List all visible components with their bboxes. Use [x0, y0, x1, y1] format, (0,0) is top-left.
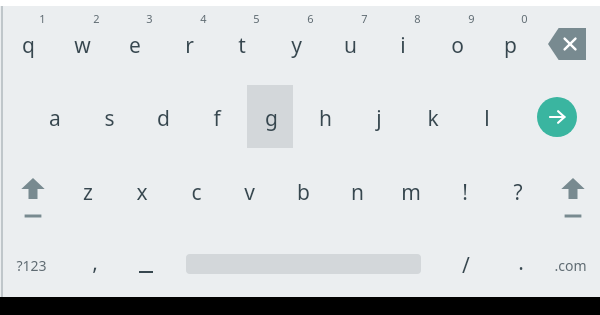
button[interactable]: e: [105, 27, 165, 63]
button[interactable]: q: [0, 27, 58, 63]
staticText: ,: [92, 248, 98, 277]
staticText: 9: [468, 11, 475, 26]
button[interactable]: s: [79, 100, 139, 136]
button[interactable]: z: [58, 174, 118, 210]
button[interactable]: Backspace: [548, 28, 586, 60]
button[interactable]: 1: [12, 0, 72, 36]
staticText: e: [129, 31, 141, 60]
button[interactable]: n: [327, 174, 387, 210]
staticText: 1: [39, 11, 46, 26]
staticText: d: [157, 104, 170, 133]
staticText: q: [22, 31, 35, 60]
button[interactable]: l: [457, 100, 517, 136]
staticText: /: [462, 251, 470, 280]
button[interactable]: v: [219, 174, 279, 210]
staticText: n: [351, 178, 364, 207]
staticText: t: [238, 31, 246, 60]
button[interactable]: w: [52, 27, 112, 63]
button[interactable]: 5: [226, 0, 286, 36]
staticText: w: [74, 31, 91, 60]
button[interactable]: Shift: [18, 176, 48, 222]
button[interactable]: k: [403, 100, 463, 136]
button[interactable]: i: [373, 27, 433, 63]
button[interactable]: 6: [280, 0, 340, 36]
button[interactable]: d: [133, 100, 193, 136]
staticText: j: [376, 104, 382, 133]
staticText: m: [401, 178, 421, 207]
button[interactable]: t: [212, 27, 272, 63]
button[interactable]: f: [187, 100, 247, 136]
button[interactable]: p: [480, 27, 540, 63]
button[interactable]: c: [166, 174, 226, 210]
button[interactable]: o: [427, 27, 487, 63]
staticText: z: [83, 178, 93, 207]
staticText: u: [344, 31, 357, 60]
button[interactable]: .com: [540, 247, 600, 283]
staticText: a: [49, 104, 61, 133]
staticText: 8: [414, 11, 421, 26]
staticText: o: [451, 31, 464, 60]
button[interactable]: u: [320, 27, 380, 63]
staticText: .: [518, 248, 524, 277]
button[interactable]: 0: [494, 0, 554, 36]
staticText: f: [213, 104, 221, 133]
button[interactable]: 8: [387, 0, 447, 36]
staticText: 2: [93, 11, 100, 26]
button[interactable]: Shift: [558, 176, 588, 222]
staticText: v: [244, 178, 255, 207]
staticText: i: [400, 31, 406, 60]
staticText: 6: [307, 11, 314, 26]
button[interactable]: Enter: [537, 97, 577, 137]
button[interactable]: x: [112, 174, 172, 210]
button[interactable]: a: [25, 100, 85, 136]
staticText: !: [462, 178, 468, 207]
button[interactable]: ?123: [1, 247, 61, 283]
staticText: l: [484, 104, 490, 133]
button[interactable]: ,: [65, 244, 125, 280]
staticText: c: [191, 178, 202, 207]
button[interactable]: 2: [66, 0, 126, 36]
staticText: ?123: [16, 256, 47, 275]
staticText: ?: [513, 178, 523, 207]
button[interactable]: g: [241, 100, 301, 136]
staticText: 3: [146, 11, 153, 26]
staticText: 7: [361, 11, 368, 26]
staticText: k: [427, 104, 439, 133]
button[interactable]: y: [266, 27, 326, 63]
button[interactable]: [128, 248, 164, 280]
staticText: y: [291, 31, 302, 60]
button[interactable]: 7: [334, 0, 394, 36]
button[interactable]: ?: [488, 174, 548, 210]
staticText: x: [136, 178, 148, 207]
button[interactable]: /: [436, 247, 496, 283]
staticText: 4: [200, 11, 207, 26]
button[interactable]: 3: [119, 0, 179, 36]
staticText: r: [185, 31, 194, 60]
button[interactable]: .: [491, 244, 551, 280]
button[interactable]: r: [159, 27, 219, 63]
button[interactable]: 9: [441, 0, 501, 36]
staticText: .com: [554, 256, 587, 275]
staticText: 0: [521, 11, 528, 26]
staticText: h: [319, 104, 332, 133]
button[interactable]: b: [273, 174, 333, 210]
button[interactable]: !: [435, 174, 495, 210]
staticText: 5: [253, 11, 260, 26]
staticText: p: [504, 31, 517, 60]
button[interactable]: 4: [173, 0, 233, 36]
staticText: b: [297, 178, 310, 207]
staticText: g: [265, 104, 278, 133]
staticText: s: [104, 104, 115, 133]
button[interactable]: j: [349, 100, 409, 136]
button[interactable]: m: [381, 174, 441, 210]
button[interactable]: h: [295, 100, 355, 136]
